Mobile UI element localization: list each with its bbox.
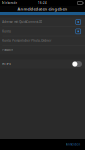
staticText: Anmelden xyxy=(65,143,80,146)
staticText: 16:24 xyxy=(38,1,47,5)
button[interactable]: HTTPS xyxy=(0,60,85,69)
button[interactable]: Konto Persönlicher Photo-Ordner xyxy=(0,36,85,45)
staticText: Passwort xyxy=(2,48,13,52)
staticText: HTTPS xyxy=(2,62,10,66)
staticText: Adresse mit QuickConnect-ID xyxy=(2,20,42,24)
button[interactable]: Adresse mit QuickConnect-ID xyxy=(0,17,85,26)
button[interactable]: Anmelden xyxy=(65,139,85,150)
staticText: Telekom.de xyxy=(1,1,17,5)
button[interactable]: Konto xyxy=(0,27,85,36)
staticText: Konto xyxy=(2,30,11,33)
staticText: Konto Persönlicher Photo-Ordner xyxy=(2,39,51,42)
button[interactable]: Passwort xyxy=(0,46,85,55)
staticText: Anmeldedaten eingeben xyxy=(17,6,67,12)
